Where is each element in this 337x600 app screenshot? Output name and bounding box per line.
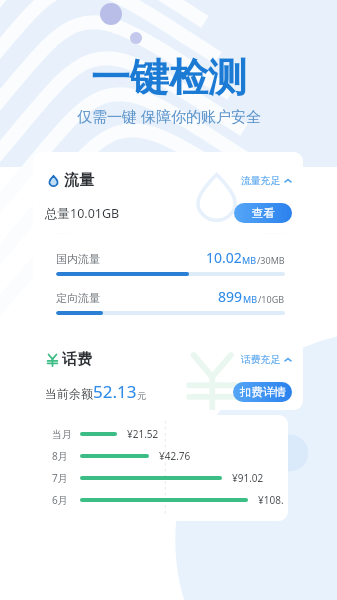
button[interactable]: 流量充足 <box>241 175 292 187</box>
staticText: 当前余额 <box>45 386 93 401</box>
staticText: ¥42.76 <box>159 449 191 463</box>
staticText: 话费充足 <box>241 354 281 366</box>
staticText: 查看 <box>252 206 275 220</box>
button[interactable]: 流量 <box>33 152 303 233</box>
staticText: 52.13 <box>93 380 137 403</box>
staticText: 8月 <box>52 449 68 463</box>
staticText: ¥21.52 <box>127 427 159 441</box>
button[interactable]: 话费 <box>33 338 303 410</box>
staticText: 总量10.01GB <box>45 205 120 222</box>
staticText: MB <box>243 293 258 305</box>
button[interactable]: 话费充足 <box>241 354 292 366</box>
staticText: ¥108.92 <box>258 493 284 507</box>
staticText: 10.02 <box>206 248 242 267</box>
staticText: 定向流量 <box>56 291 100 305</box>
staticText: 当月 <box>52 428 72 441</box>
staticText: 扣费详情 <box>240 385 286 399</box>
button[interactable]: 查看 <box>234 203 292 223</box>
staticText: 国内流量 <box>56 252 100 266</box>
staticText: 仅需一键 保障你的账户安全 <box>77 106 261 126</box>
other: Collapse <box>284 356 292 364</box>
staticText: 话费 <box>62 350 92 369</box>
staticText: 7月 <box>52 471 68 485</box>
button[interactable]: 扣费详情 <box>233 382 292 402</box>
staticText: 899 <box>218 287 243 306</box>
staticText: 6月 <box>52 493 68 507</box>
staticText: 元 <box>137 390 146 401</box>
staticText: 流量 <box>64 171 94 190</box>
other: Collapse <box>284 177 292 185</box>
staticText: /30MB <box>257 254 285 266</box>
staticText: ¥91.02 <box>232 471 264 485</box>
staticText: 一键检测 <box>91 53 247 102</box>
button[interactable]: 当月 <box>45 415 288 521</box>
staticText: 流量充足 <box>241 175 281 187</box>
staticText: /10GB <box>258 293 285 305</box>
staticText: MB <box>242 254 257 266</box>
